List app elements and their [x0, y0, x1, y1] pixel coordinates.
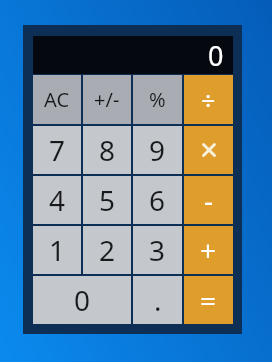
- staticText: 1: [49, 231, 66, 269]
- button[interactable]: [184, 126, 233, 174]
- staticText: 5: [99, 181, 116, 219]
- staticText: 6: [149, 181, 166, 219]
- staticText: 9: [149, 131, 166, 169]
- staticText: -: [204, 181, 214, 219]
- button[interactable]: .: [133, 276, 182, 324]
- staticText: +/-: [94, 86, 120, 113]
- staticText: 0: [74, 281, 91, 319]
- button[interactable]: 6: [133, 176, 182, 224]
- staticText: 2: [99, 231, 116, 269]
- button[interactable]: 0: [33, 276, 131, 324]
- staticText: =: [200, 281, 217, 319]
- button[interactable]: +/-: [83, 75, 131, 124]
- button[interactable]: -: [184, 176, 233, 224]
- staticText: 7: [49, 131, 66, 169]
- staticText: AC: [44, 86, 70, 113]
- staticText: 8: [99, 131, 116, 169]
- button[interactable]: +: [184, 226, 233, 274]
- staticText: %: [149, 86, 166, 113]
- staticText: ÷: [201, 83, 216, 117]
- button[interactable]: 5: [83, 176, 131, 224]
- button[interactable]: 4: [33, 176, 81, 224]
- button[interactable]: 7: [33, 126, 81, 174]
- staticText: +: [200, 231, 217, 269]
- staticText: .: [154, 281, 162, 319]
- button[interactable]: %: [133, 75, 182, 124]
- button[interactable]: 9: [133, 126, 182, 174]
- staticText: 0: [208, 37, 224, 74]
- button[interactable]: 2: [83, 226, 131, 274]
- button[interactable]: =: [184, 276, 233, 324]
- button[interactable]: AC: [33, 75, 81, 124]
- button[interactable]: 1: [33, 226, 81, 274]
- staticText: 4: [49, 181, 66, 219]
- button[interactable]: 3: [133, 226, 182, 274]
- staticText: 3: [149, 231, 166, 269]
- button[interactable]: ÷: [184, 75, 233, 124]
- button[interactable]: 8: [83, 126, 131, 174]
